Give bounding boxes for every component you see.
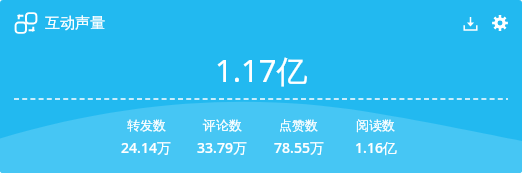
button[interactable]: 点赞数 [260, 117, 337, 157]
other: 互动声量 [13, 10, 39, 36]
staticText: 24.14万 [121, 138, 171, 157]
staticText: 阅读数 [356, 117, 395, 133]
staticText: 78.55万 [274, 138, 324, 157]
staticText: 互动声量 [45, 14, 105, 33]
button[interactable]: 下载 [458, 11, 482, 35]
staticText: 转发数 [127, 117, 166, 133]
button[interactable]: 评论数 [184, 117, 260, 157]
staticText: 33.79万 [197, 138, 247, 157]
button[interactable]: 转发数 [108, 117, 184, 157]
staticText: 评论数 [203, 117, 242, 133]
button[interactable]: 设置 [488, 11, 512, 35]
staticText: 1.17亿 [215, 49, 308, 91]
button[interactable]: 阅读数 [337, 117, 414, 157]
staticText: 1.16亿 [355, 138, 397, 157]
staticText: 点赞数 [279, 117, 318, 133]
